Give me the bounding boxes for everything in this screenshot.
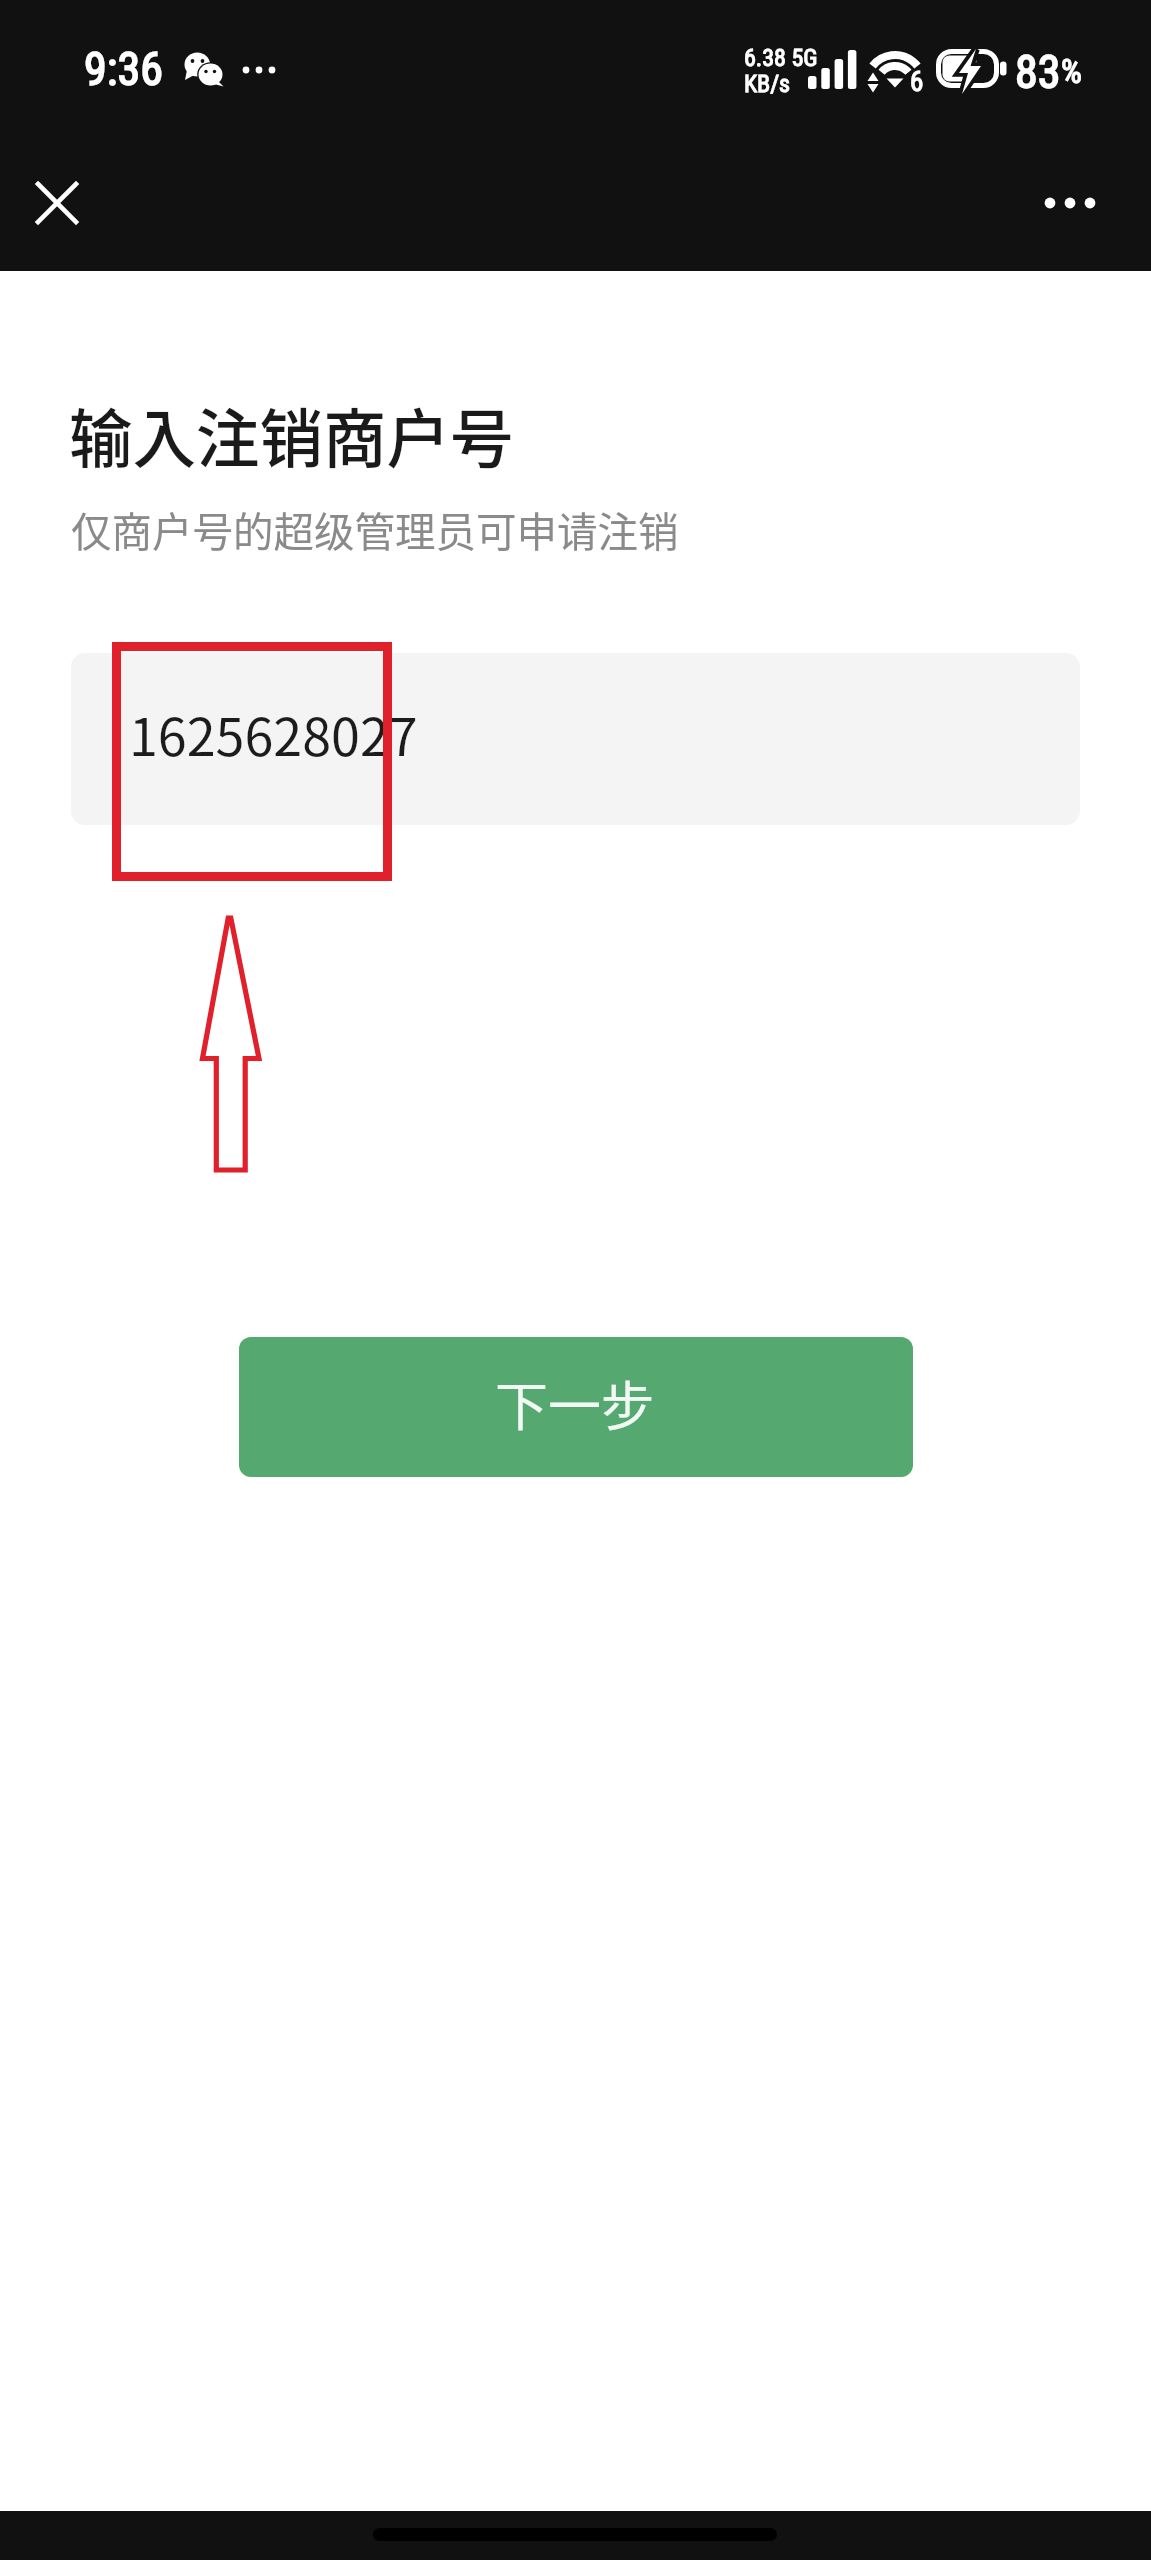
button[interactable]: 1625628027	[71, 653, 1080, 825]
staticText: 9:36	[84, 42, 163, 96]
button[interactable]: 下一步	[239, 1337, 913, 1477]
staticText: KB/s	[744, 70, 791, 98]
staticText: 6	[910, 66, 924, 98]
button[interactable]: Close	[12, 158, 102, 248]
staticText: 1625628027	[129, 696, 418, 771]
staticText: 83	[1015, 45, 1061, 99]
button[interactable]: More options	[1020, 158, 1110, 248]
staticText: 下一步	[495, 1365, 654, 1442]
staticText: 仅商户号的超级管理员可申请注销	[71, 500, 679, 559]
staticText: 6.38 5G	[744, 44, 818, 72]
staticText: %	[1061, 52, 1082, 91]
staticText: 输入注销商户号	[69, 388, 514, 480]
